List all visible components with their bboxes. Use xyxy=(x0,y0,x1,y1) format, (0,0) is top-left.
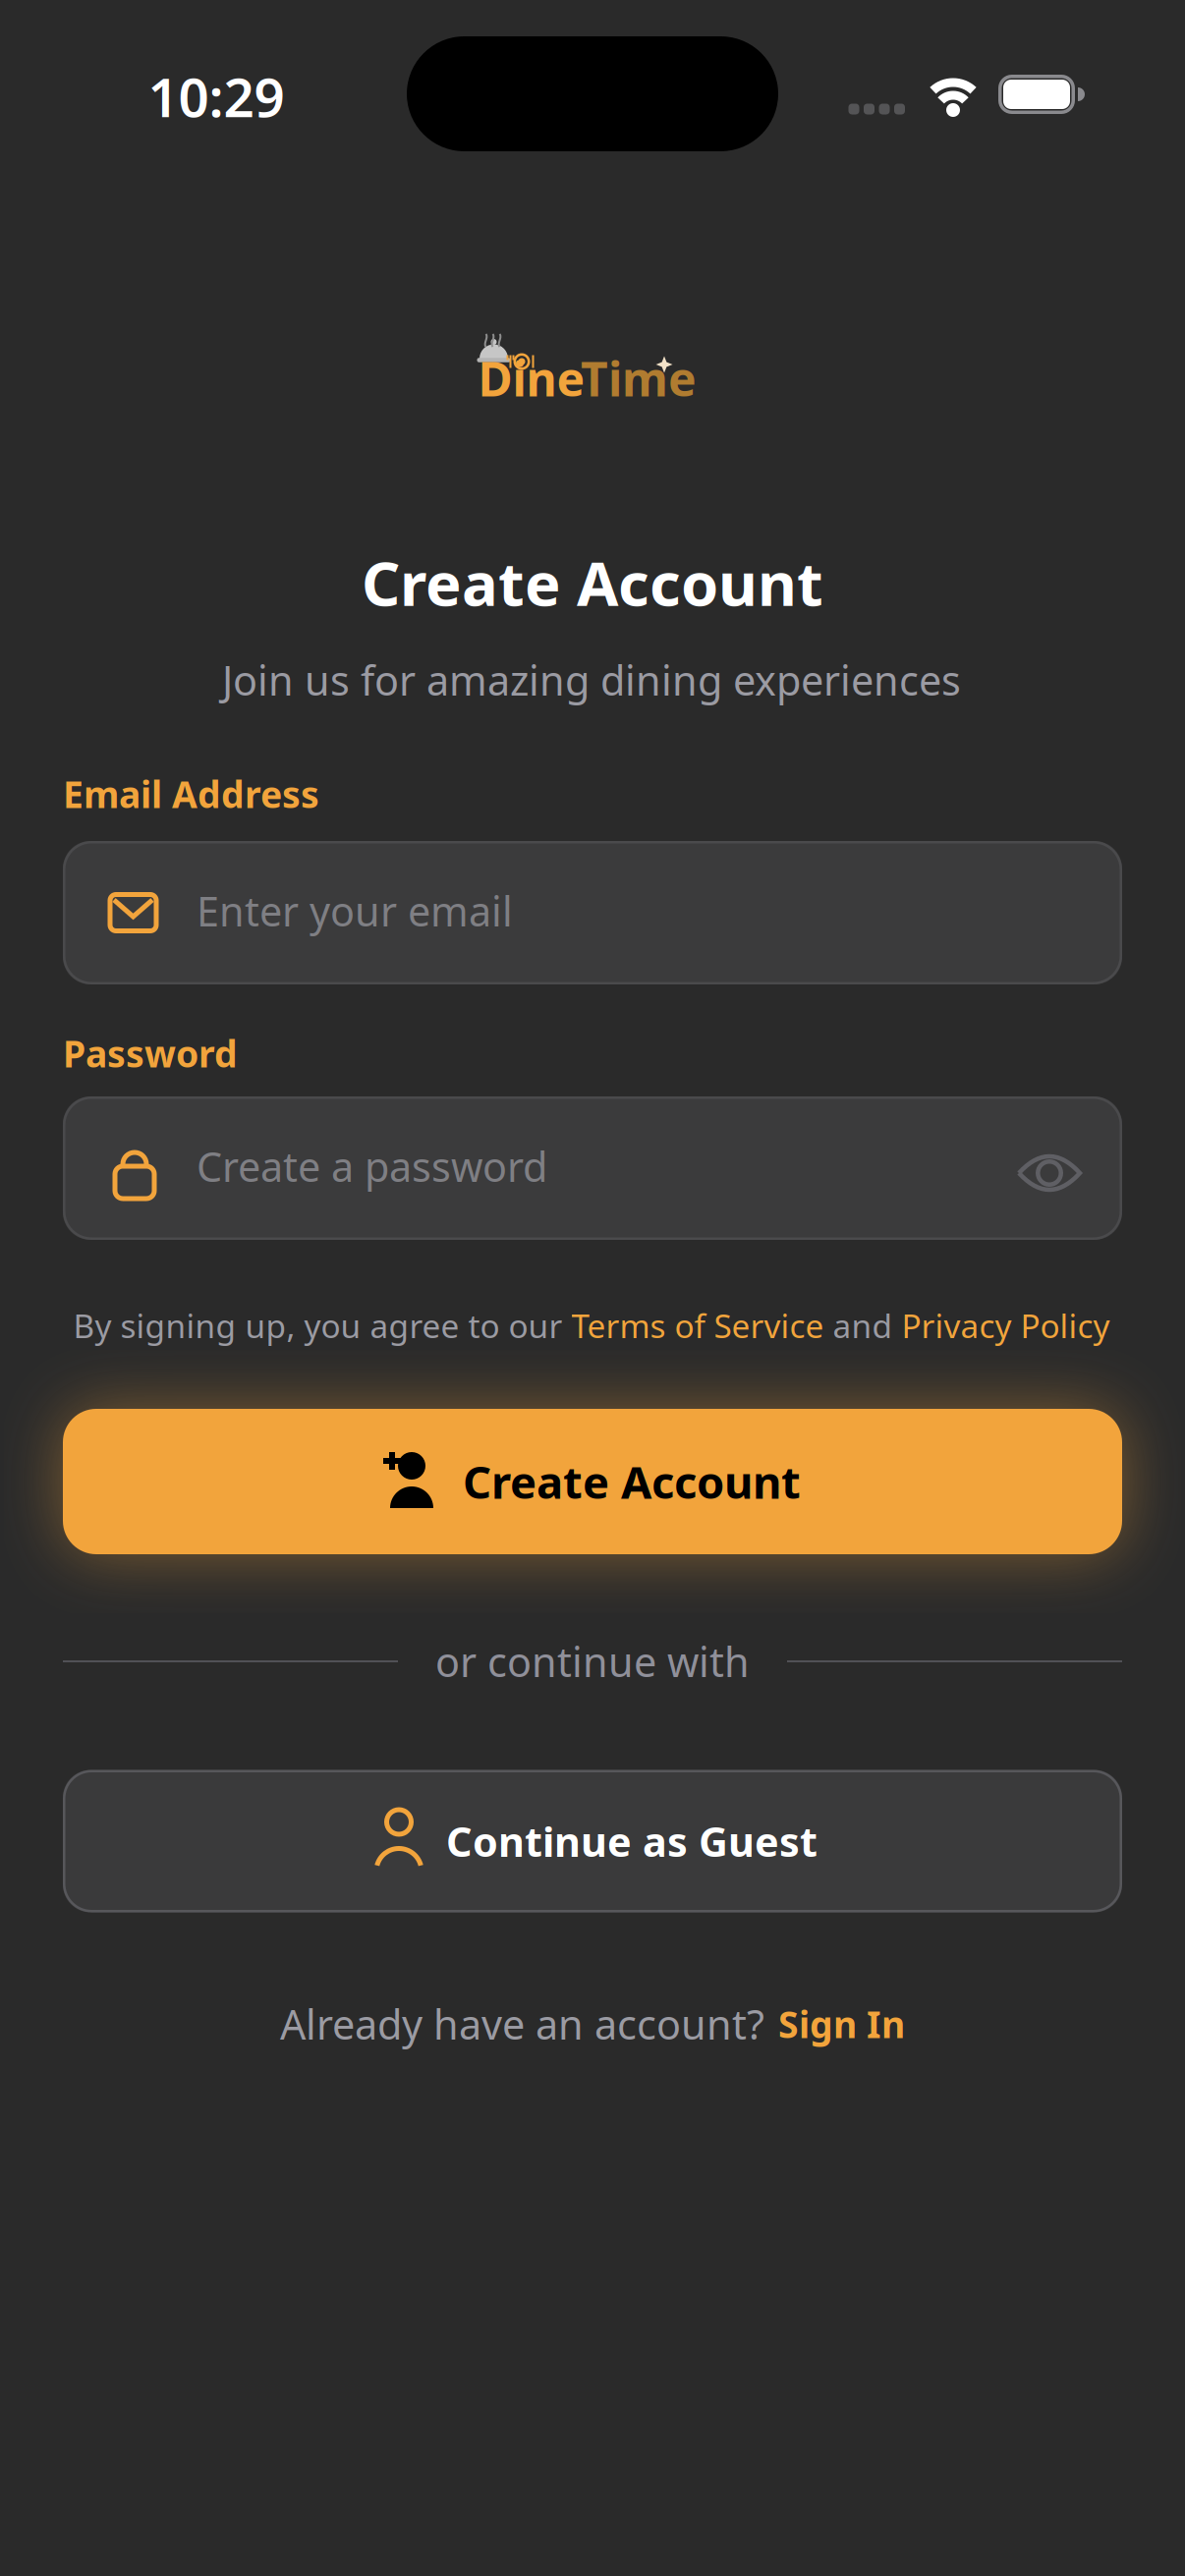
button[interactable]: Email address xyxy=(63,841,1122,984)
staticText: Create a password xyxy=(197,1139,547,1193)
button[interactable]: Sign In xyxy=(778,1999,905,2048)
staticText: Dine xyxy=(478,347,585,409)
button[interactable]: Continue as Guest xyxy=(63,1770,1122,1912)
staticText: By signing up, you agree to our xyxy=(73,1304,571,1347)
staticText: 10:29 xyxy=(148,61,284,132)
button[interactable]: Password xyxy=(63,1096,1122,1240)
staticText: Time xyxy=(581,347,697,409)
staticText: Already have an account? xyxy=(280,1997,764,2051)
button[interactable]: Create Account xyxy=(63,1409,1122,1554)
staticText: or continue with xyxy=(435,1634,750,1688)
button[interactable]: Privacy Policy xyxy=(902,1304,1110,1347)
staticText: Privacy Policy xyxy=(902,1304,1110,1347)
staticText: and xyxy=(824,1304,902,1347)
staticText: Continue as Guest xyxy=(446,1814,818,1868)
staticText: Join us for amazing dining experiences xyxy=(222,653,961,707)
staticText: Create Account xyxy=(463,1452,801,1511)
staticText: Create Account xyxy=(362,543,823,623)
staticText: Terms of Service xyxy=(571,1304,824,1347)
staticText: Sign In xyxy=(778,1999,905,2048)
staticText: Enter your email xyxy=(197,884,513,938)
staticText: Email Address xyxy=(63,769,319,818)
staticText: Password xyxy=(63,1029,238,1078)
button[interactable]: Terms of Service xyxy=(571,1304,824,1347)
button[interactable]: Show password xyxy=(1020,1144,1079,1203)
